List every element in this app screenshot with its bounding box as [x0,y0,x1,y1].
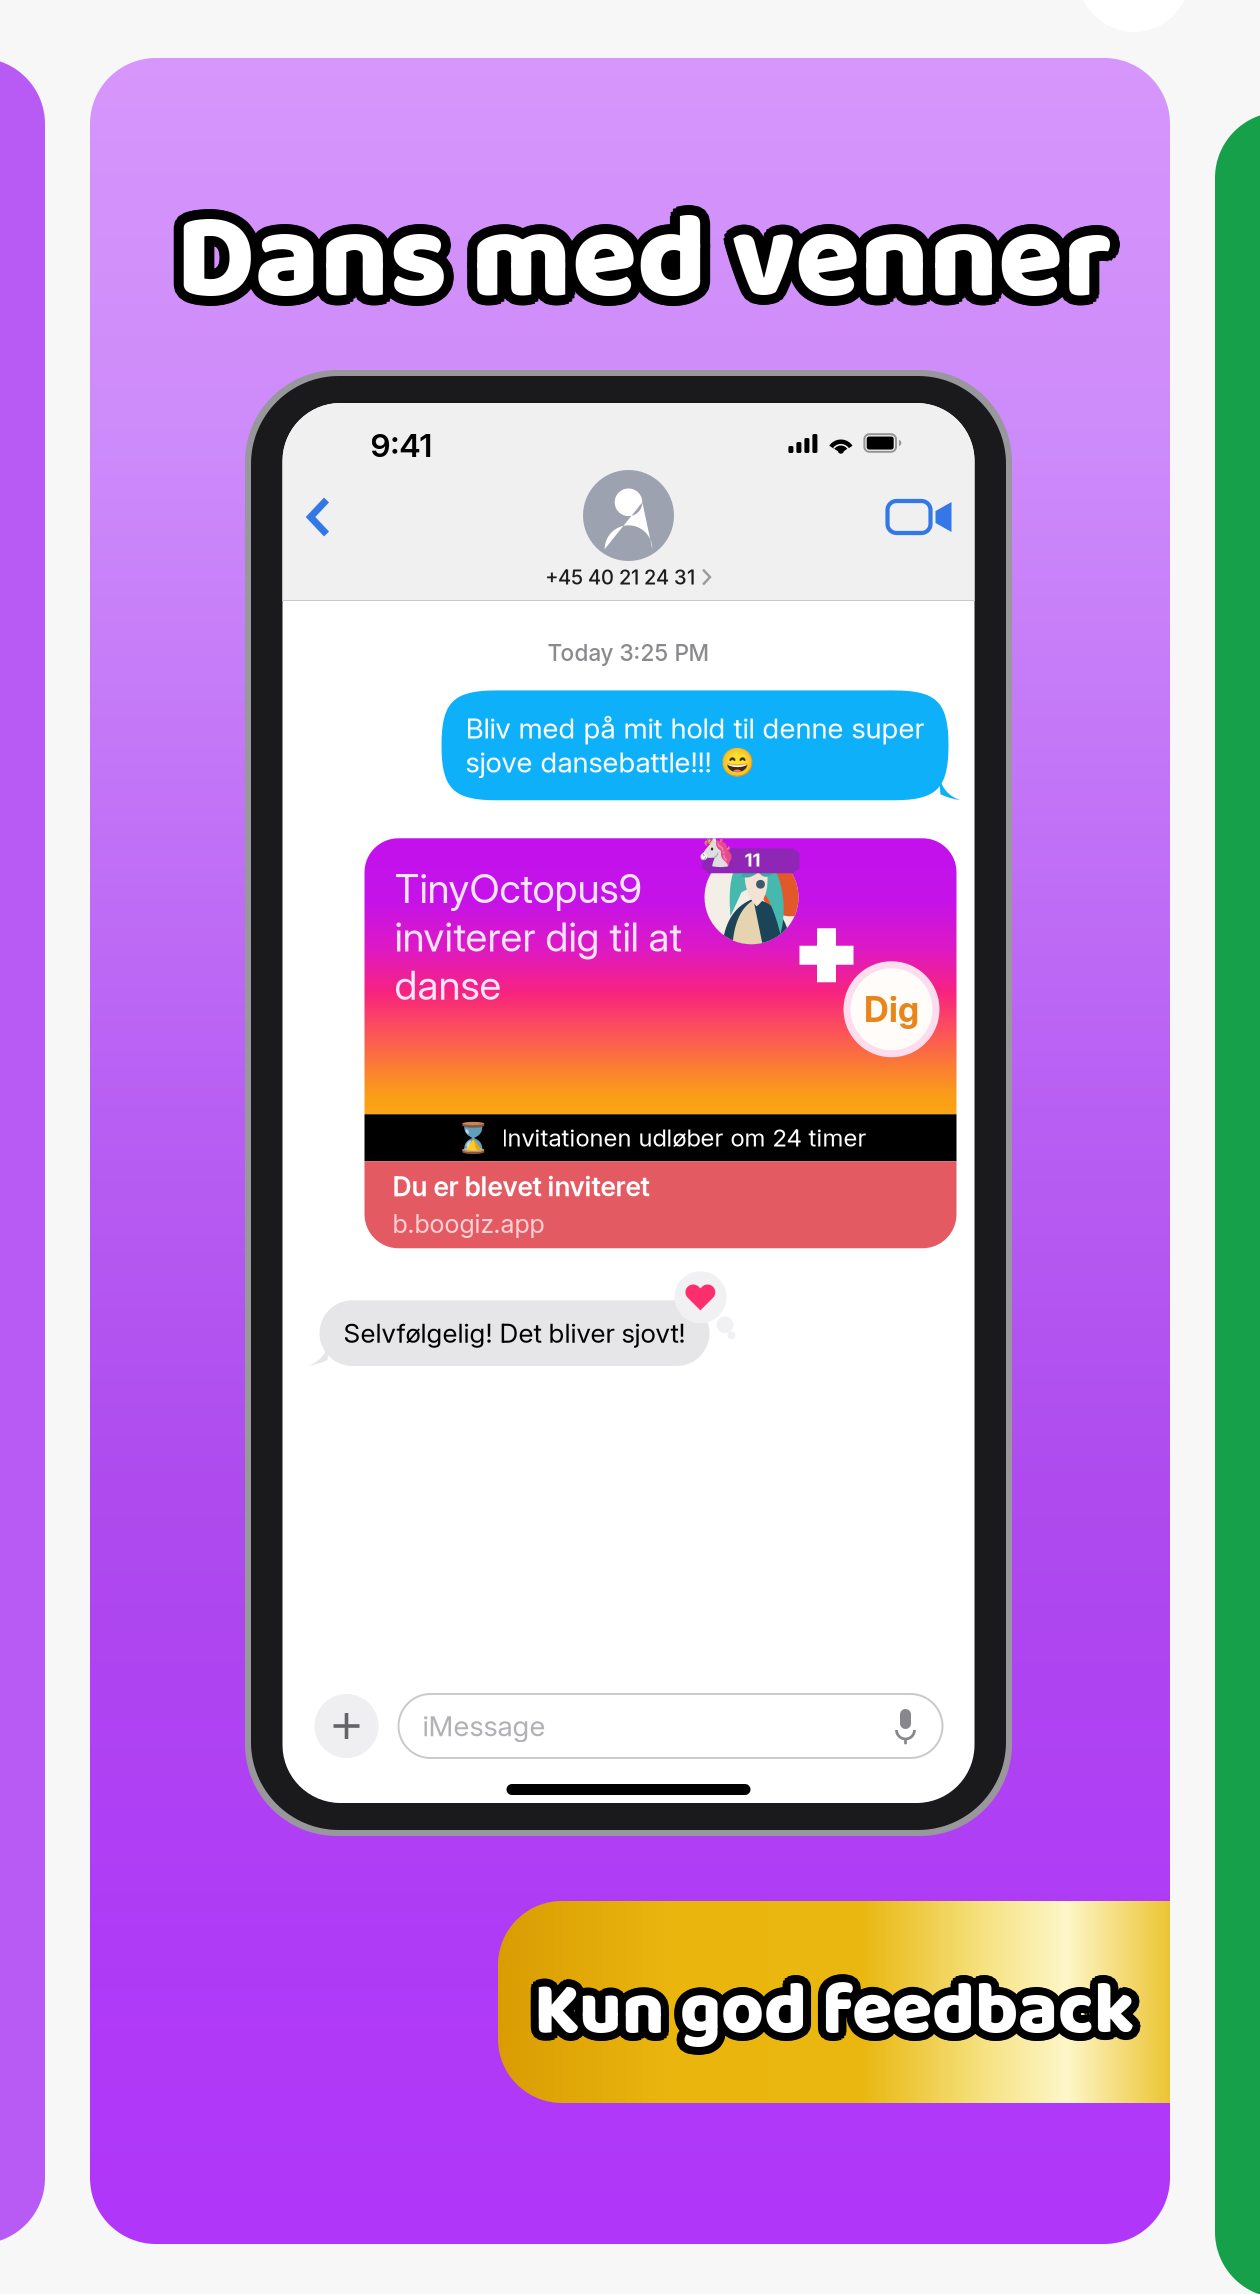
staticText: Kun god feedback [537,1960,1138,2078]
staticText: Kun god feedback [527,1950,1128,2067]
staticText: Kun god feedback [541,1950,1142,2067]
staticText: iMessage [422,1709,545,1743]
staticText: 11 [744,848,760,871]
staticText: Dig [864,988,919,1030]
staticText: Kun god feedback [527,1956,1128,2074]
staticText: Kun god feedback [534,1961,1135,2078]
staticText: Kun god feedback [534,1953,1135,2070]
staticText: Kun god feedback [540,1959,1141,2076]
staticText: Dans med venner [180,175,1116,365]
staticText: b.boogiz.app [392,1209,544,1239]
staticText: TinyOctopus9 inviterer dig til at danse [394,864,682,1009]
staticText: Bliv med på mit hold til denne super sjo… [465,711,924,779]
staticText: Kun god feedback [540,1947,1141,2065]
staticText: Dans med venner [176,166,1112,356]
staticText: Dans med venner [186,166,1122,356]
staticText: Kun god feedback [531,1960,1132,2078]
button[interactable]: Back [282,474,354,560]
staticText: 9:41 [370,426,432,465]
staticText: Kun god feedback [534,1945,1135,2062]
staticText: Dans med venner [180,157,1116,347]
staticText: ⌛ [454,1121,491,1155]
staticText: Dans med venner [185,170,1121,360]
staticText: Dans med venner [185,162,1121,352]
staticText: Dans med venner [172,175,1108,365]
staticText: Kun god feedback [526,1953,1127,2070]
staticText: Dans med venner [166,166,1102,356]
staticText: Selvfølgelig! Det bliver sjovt! [343,1317,685,1349]
staticText: Dans med venner [169,173,1105,363]
staticText: 🦄 [696,833,734,869]
staticText: Kun god feedback [528,1959,1129,2076]
staticText: ♥ [683,1276,718,1318]
staticText: Dans med venner [167,170,1103,360]
staticText: Kun god feedback [542,1953,1143,2070]
staticText: Dans med venner [176,156,1112,346]
button[interactable]: FaceTime [865,474,974,560]
staticText: Today 3:25 PM [547,639,709,666]
staticText: Dans med venner [176,176,1112,366]
staticText: Dans med venner [172,157,1108,347]
staticText: Kun god feedback [541,1956,1142,2074]
staticText: Du er blevet inviteret [392,1170,649,1203]
staticText: Invitationen udløber om 24 timer [501,1123,866,1152]
staticText: Dans med venner [183,159,1119,349]
button[interactable]: Dig [843,961,939,1057]
button[interactable]: Add attachment [314,1694,378,1758]
staticText: Kun god feedback [537,1946,1138,2063]
staticText: Dans med venner [183,173,1119,363]
staticText: Kun god feedback [531,1946,1132,2063]
staticText: Kun god feedback [528,1947,1129,2065]
staticText: Dans med venner [167,162,1103,352]
staticText: Dans med venner [169,159,1105,349]
staticText: +45 40 21 24 31 [545,565,695,589]
